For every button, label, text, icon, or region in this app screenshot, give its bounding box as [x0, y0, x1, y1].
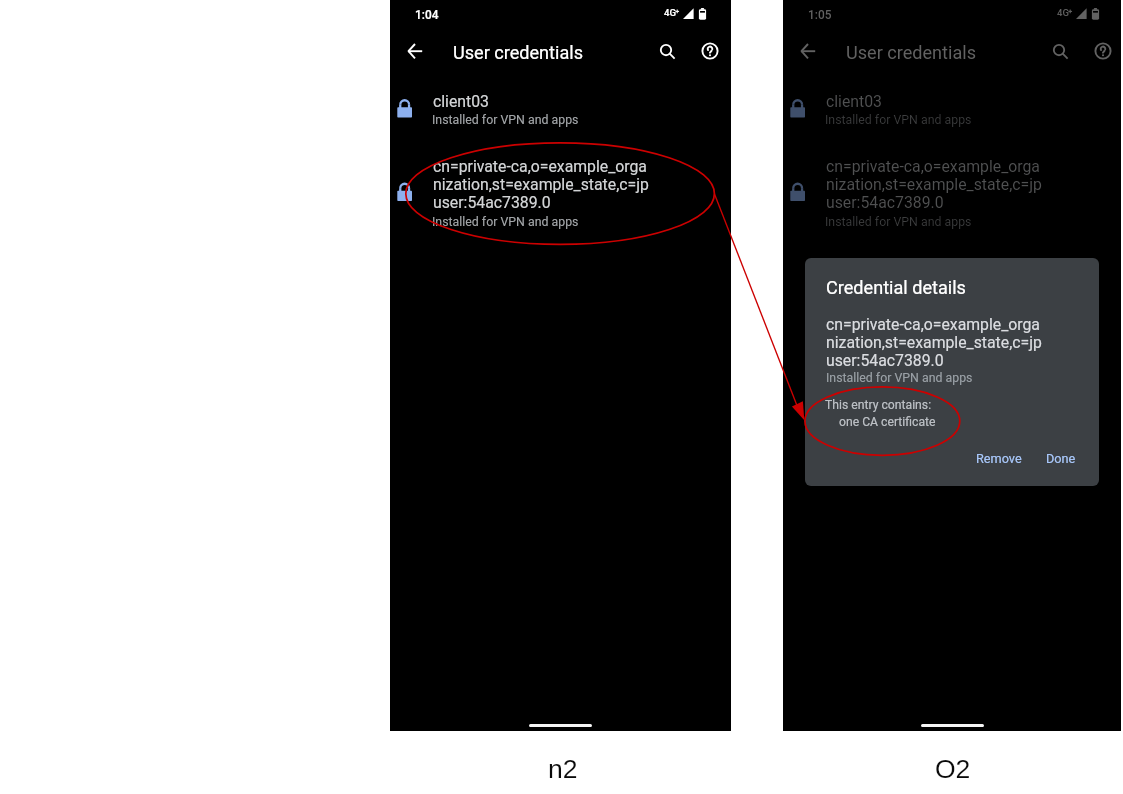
button[interactable]: Navigate up	[399, 35, 431, 67]
staticText: user:54ac7389.0	[826, 351, 944, 370]
staticText: 1:04	[415, 8, 439, 22]
button[interactable]: Search	[650, 34, 682, 66]
staticText: Installed for VPN and apps	[825, 113, 972, 127]
button[interactable]: cn=private-ca,o=example_orga	[390, 150, 731, 233]
staticText: nization,st=example_state,c=jp	[433, 175, 649, 194]
staticText: client03	[826, 92, 882, 111]
staticText: Done	[1046, 451, 1076, 466]
staticText: Installed for VPN and apps	[825, 215, 972, 229]
button[interactable]: Navigate up	[792, 35, 824, 67]
staticText: This entry contains:	[825, 398, 932, 412]
staticText: 4G	[1057, 7, 1069, 18]
button[interactable]: Help	[1087, 35, 1119, 67]
staticText: 4G	[664, 7, 676, 18]
staticText: nization,st=example_state,c=jp	[826, 175, 1042, 194]
staticText: Installed for VPN and apps	[432, 215, 579, 229]
button[interactable]: client03	[783, 85, 1121, 131]
button[interactable]: Search	[1043, 34, 1075, 66]
button[interactable]: client03	[390, 85, 731, 131]
staticText: Remove	[976, 451, 1022, 466]
button[interactable]: cn=private-ca,o=example_orga	[783, 150, 1121, 233]
staticText: cn=private-ca,o=example_orga	[433, 157, 647, 176]
staticText: nization,st=example_state,c=jp	[826, 333, 1042, 352]
staticText: Installed for VPN and apps	[432, 113, 579, 127]
staticText: cn=private-ca,o=example_orga	[826, 315, 1040, 334]
staticText: cn=private-ca,o=example_orga	[826, 157, 1040, 176]
staticText: User credentials	[846, 42, 977, 63]
button[interactable]: Help	[694, 35, 726, 67]
staticText: n2	[548, 754, 578, 784]
staticText: client03	[433, 92, 489, 111]
button[interactable]: Done	[1041, 446, 1081, 470]
staticText: Installed for VPN and apps	[826, 371, 973, 385]
staticText: user:54ac7389.0	[826, 193, 944, 212]
staticText: O2	[935, 754, 971, 784]
staticText: Credential details	[826, 277, 966, 298]
staticText: one CA certificate	[839, 415, 936, 429]
button[interactable]: Remove	[971, 446, 1027, 470]
staticText: User credentials	[453, 42, 584, 63]
staticText: 1:05	[808, 8, 832, 22]
staticText: user:54ac7389.0	[433, 193, 551, 212]
